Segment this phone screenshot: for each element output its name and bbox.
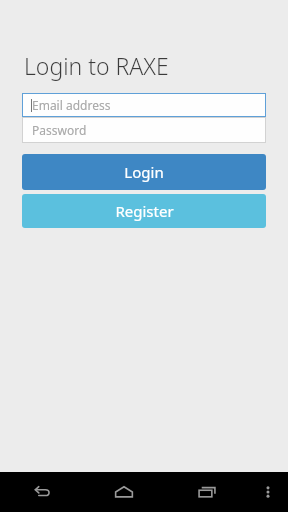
button[interactable]: Recent apps: [165, 472, 248, 512]
button[interactable]: More options: [248, 472, 288, 512]
button[interactable]: Password: [22, 117, 266, 143]
staticText: Email address: [32, 97, 111, 113]
button[interactable]: Email address: [22, 93, 266, 117]
button[interactable]: Register: [22, 194, 266, 228]
staticText: Register: [115, 201, 174, 221]
button[interactable]: Back: [0, 472, 82, 512]
staticText: Login: [124, 162, 164, 182]
staticText: Password: [32, 122, 87, 138]
button[interactable]: Home: [82, 472, 165, 512]
staticText: Login to RAXE: [24, 50, 169, 81]
button[interactable]: Login: [22, 154, 266, 190]
